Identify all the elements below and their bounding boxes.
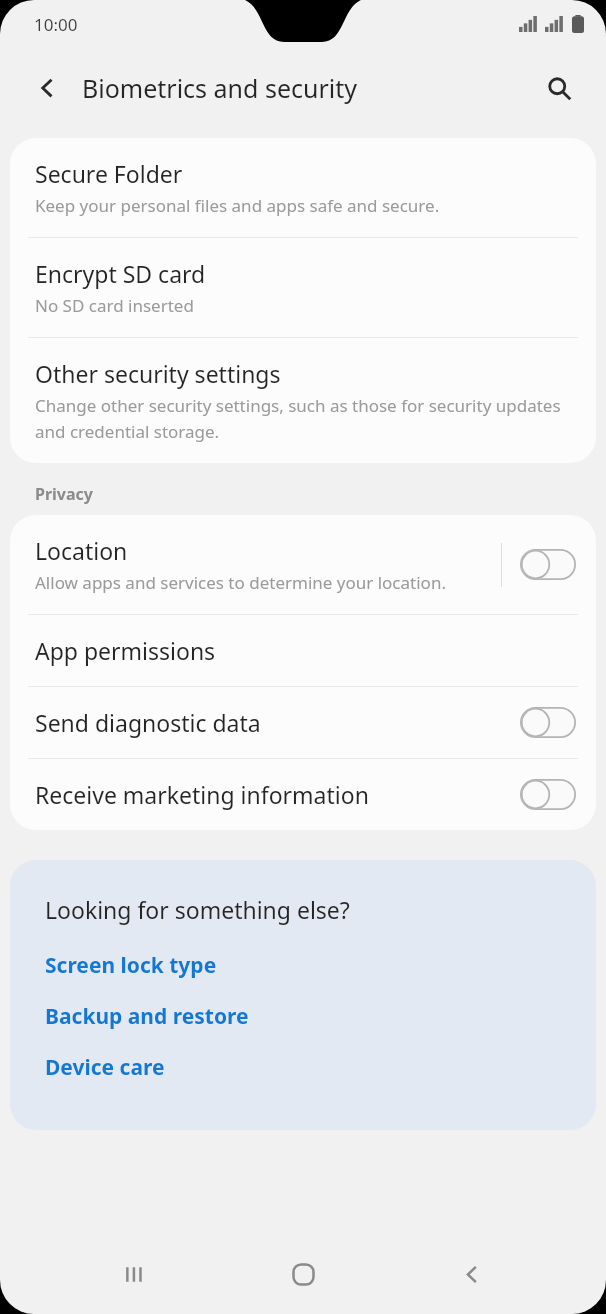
staticText: Looking for something else? — [45, 894, 350, 925]
button[interactable]: Screen lock type — [45, 951, 217, 980]
button[interactable]: Device care — [45, 1053, 165, 1082]
staticText: Other security settings — [35, 358, 281, 389]
button[interactable]: Encrypt SD card — [10, 238, 596, 337]
staticText: Send diagnostic data — [35, 707, 261, 738]
button[interactable]: Toggle off — [520, 779, 576, 810]
staticText: 10:00 — [34, 13, 78, 36]
button[interactable]: Receive marketing information — [10, 759, 596, 830]
staticText: Biometrics and security — [82, 71, 358, 105]
button[interactable]: Home — [268, 1239, 338, 1309]
staticText: Screen lock type — [45, 951, 217, 980]
button[interactable]: Send diagnostic data — [10, 687, 596, 758]
button[interactable]: Toggle off — [520, 707, 576, 738]
button[interactable]: Backup and restore — [45, 1002, 249, 1031]
staticText: Backup and restore — [45, 1002, 249, 1031]
button[interactable]: Other security settings — [10, 338, 596, 463]
button[interactable]: App permissions — [10, 615, 596, 686]
staticText: Allow apps and services to determine you… — [35, 571, 446, 594]
staticText: Secure Folder — [35, 158, 183, 189]
button[interactable]: Secure Folder — [10, 138, 596, 237]
button[interactable]: Back — [26, 66, 70, 110]
staticText: No SD card inserted — [35, 294, 194, 317]
button[interactable]: Recents — [99, 1239, 169, 1309]
button[interactable]: Back — [437, 1239, 507, 1309]
staticText: Encrypt SD card — [35, 258, 206, 289]
staticText: Location — [35, 535, 128, 566]
button[interactable]: Toggle off — [520, 549, 576, 580]
staticText: Privacy — [35, 483, 93, 505]
staticText: Receive marketing information — [35, 779, 369, 810]
button[interactable]: Location — [10, 515, 596, 614]
staticText: Change other security settings, such as … — [35, 394, 568, 443]
staticText: Device care — [45, 1053, 165, 1082]
button[interactable]: Search — [537, 66, 581, 110]
staticText: Keep your personal files and apps safe a… — [35, 194, 440, 217]
staticText: App permissions — [35, 635, 216, 666]
